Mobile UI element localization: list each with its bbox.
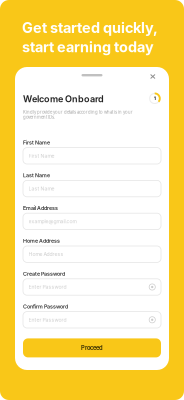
staticText: Confirm Password <box>23 303 68 310</box>
button[interactable]: Last Name <box>23 180 161 197</box>
staticText: First Name <box>23 139 50 146</box>
button[interactable]: Enter Password <box>23 312 161 328</box>
staticText: Enter Password <box>28 317 66 323</box>
staticText: Last Name <box>28 185 54 192</box>
staticText: Welcome Onboard <box>23 93 104 104</box>
staticText: Get started quickly, <box>22 19 158 36</box>
staticText: 1 <box>154 95 156 102</box>
staticText: example@gmail.com <box>28 218 76 224</box>
staticText: Enter Password <box>28 284 66 290</box>
staticText: Email Address <box>23 205 58 211</box>
staticText: Create Password <box>23 270 65 277</box>
button[interactable]: Proceed <box>23 338 161 357</box>
staticText: Last Name <box>23 172 50 179</box>
staticText: Home Address <box>23 238 60 244</box>
button[interactable]: Home Address <box>23 246 161 262</box>
staticText: Kindly provide your details according to… <box>23 109 133 120</box>
staticText: Proceed <box>81 344 103 351</box>
button[interactable]: example@gmail.com <box>23 213 161 230</box>
button[interactable]: Enter Password <box>23 279 161 295</box>
button[interactable]: First Name <box>23 148 161 164</box>
staticText: start earning today <box>22 38 154 56</box>
staticText: Home Address <box>28 251 63 257</box>
staticText: First Name <box>28 153 54 159</box>
button[interactable]: Close <box>145 68 161 84</box>
